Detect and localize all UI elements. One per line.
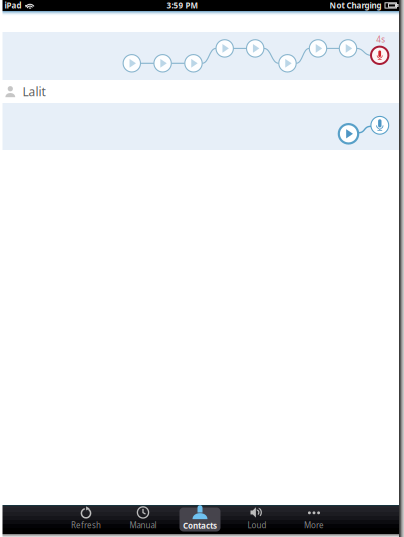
staticText: Lalit — [22, 83, 45, 99]
staticText: Refresh — [71, 520, 101, 530]
staticText: Contacts — [183, 520, 217, 531]
button[interactable]: Lalit — [2, 80, 401, 103]
button[interactable]: Play — [309, 40, 327, 57]
button[interactable]: Record — [371, 47, 388, 64]
button[interactable]: Play — [339, 40, 357, 57]
button[interactable]: More — [285, 503, 342, 535]
button[interactable]: Play — [339, 124, 358, 143]
staticText: Not Charging — [329, 0, 381, 11]
button[interactable]: Record — [371, 116, 389, 134]
button[interactable]: Play — [185, 55, 202, 72]
button[interactable]: Refresh — [57, 503, 114, 535]
staticText: Manual — [129, 520, 156, 530]
staticText: Loud — [247, 520, 266, 530]
button[interactable]: Play — [279, 55, 296, 72]
button[interactable]: Play — [216, 40, 233, 57]
button[interactable]: Play — [123, 55, 140, 72]
staticText: More — [304, 520, 324, 530]
staticText: 4s — [376, 34, 385, 45]
button[interactable]: Play — [154, 55, 171, 72]
button[interactable]: Play — [246, 40, 264, 57]
button[interactable]: Loud — [228, 503, 285, 535]
staticText: 3:59 PM — [166, 0, 198, 11]
button[interactable]: Manual — [114, 503, 171, 535]
staticText: iPad — [4, 0, 21, 11]
button[interactable]: Contacts — [171, 503, 228, 535]
